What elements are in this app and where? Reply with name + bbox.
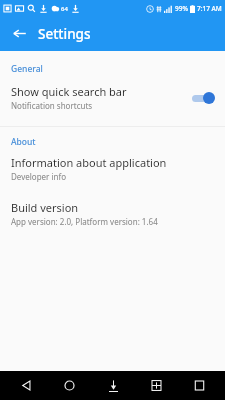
button[interactable]: Back (0, 16, 38, 51)
button[interactable]: Home (52, 371, 86, 400)
button[interactable]: Hide keyboard (96, 371, 130, 400)
button[interactable]: Toggle quick search bar (190, 90, 216, 106)
staticText: Build version (11, 200, 79, 215)
staticText: Show quick search bar (11, 84, 127, 99)
button[interactable]: Information about application (0, 152, 225, 185)
button[interactable]: Recent apps (182, 371, 216, 400)
staticText: App version: 2.0, Platform version: 1.64 (11, 216, 158, 227)
staticText: 7:17 AM (197, 4, 222, 13)
staticText: About (11, 136, 36, 148)
staticText: Information about application (11, 155, 167, 170)
button[interactable]: Show quick search bar (0, 79, 225, 116)
button[interactable]: Back (9, 371, 43, 400)
staticText: General (11, 63, 43, 75)
button[interactable]: Split screen (139, 371, 173, 400)
button[interactable]: Build version (0, 197, 225, 230)
staticText: Developer info (11, 171, 67, 182)
staticText: 64 (61, 5, 68, 13)
staticText: Settings (38, 25, 91, 43)
staticText: Notification shortcuts (11, 100, 93, 111)
staticText: 99% (175, 4, 188, 13)
